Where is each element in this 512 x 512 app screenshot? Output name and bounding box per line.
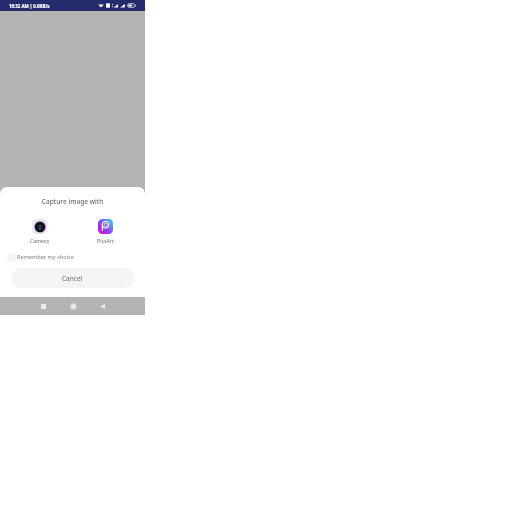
button[interactable]: Dismiss	[0, 0, 145, 187]
button[interactable]: Cancel	[11, 268, 134, 288]
button[interactable]: Remember my choice	[0, 250, 145, 264]
staticText: PicsArt	[97, 237, 114, 244]
button[interactable]: Recent apps	[33, 297, 53, 315]
button[interactable]: Camera	[7, 218, 72, 245]
button[interactable]: Home	[63, 297, 83, 315]
staticText: Capture image with	[0, 197, 145, 206]
staticText: Remember my choice	[17, 253, 74, 261]
button[interactable]: PicsArt	[72, 218, 138, 245]
staticText: Camera	[30, 237, 49, 244]
staticText: 10:32 AM | 0.0KB/s	[9, 3, 50, 9]
staticText: Cancel	[62, 274, 83, 283]
button[interactable]: Back	[92, 297, 112, 315]
